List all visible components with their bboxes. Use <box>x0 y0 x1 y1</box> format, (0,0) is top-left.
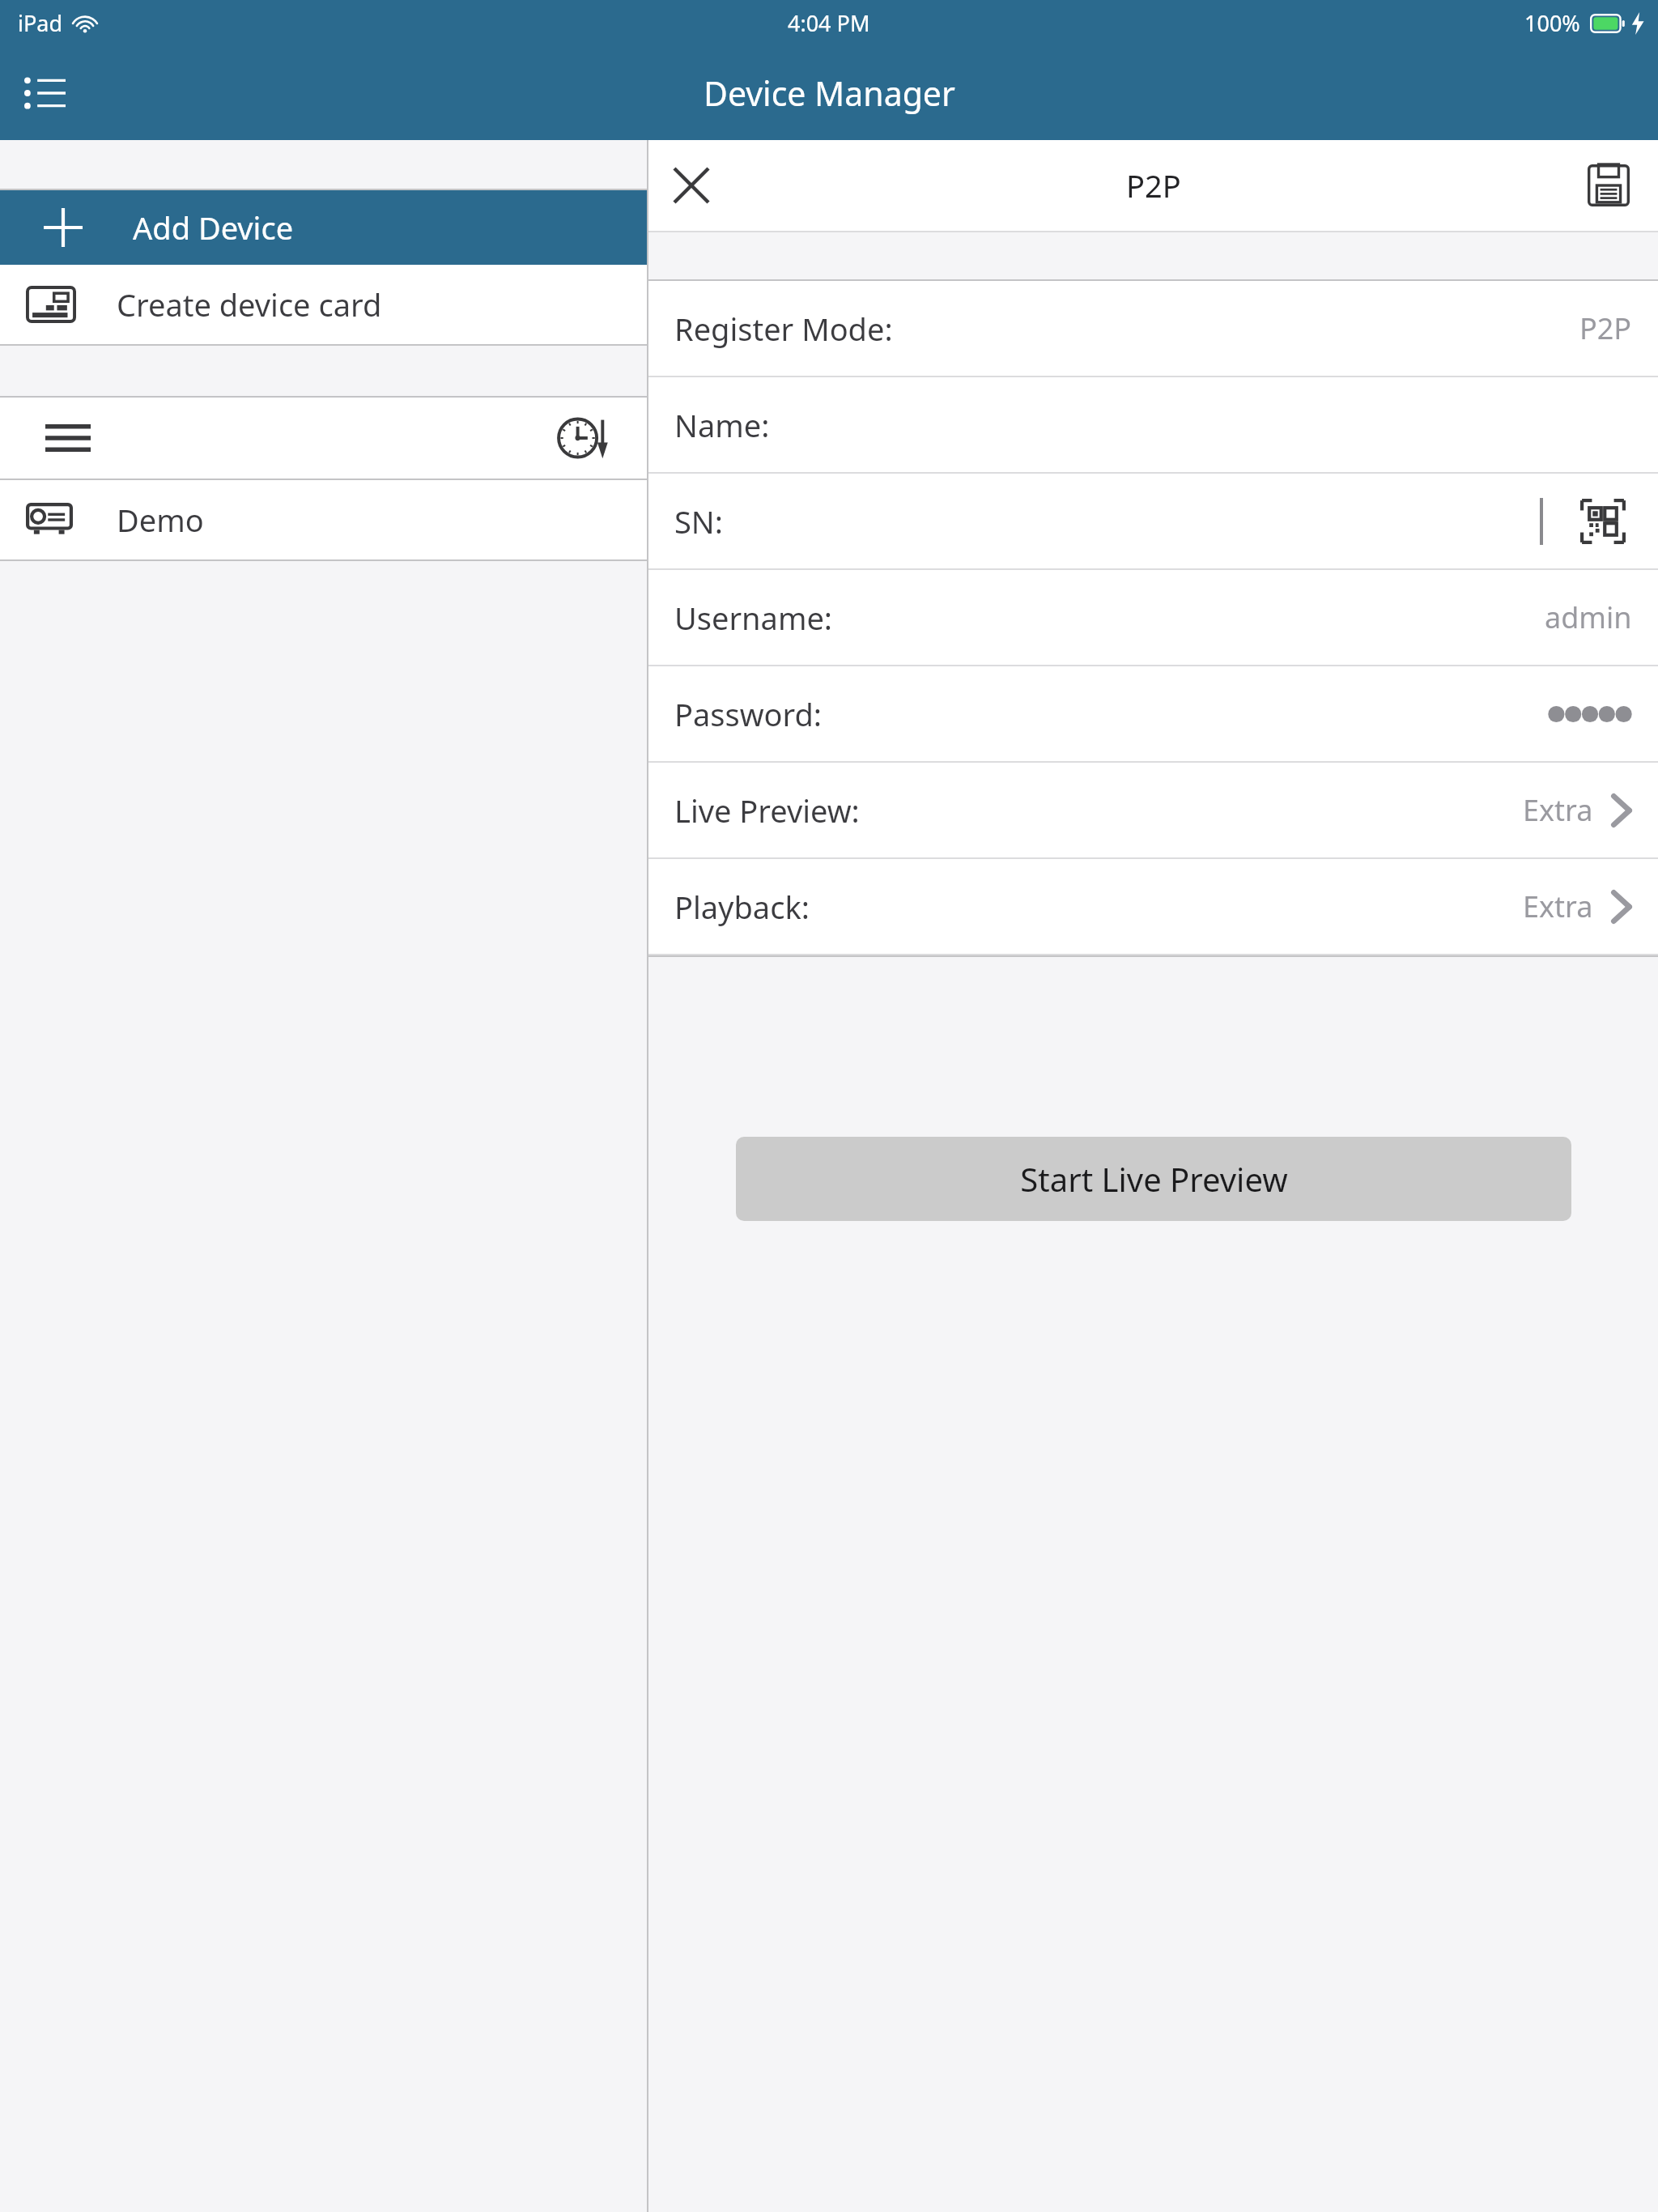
button[interactable]: Close <box>657 151 726 220</box>
staticText: iPad <box>18 8 63 38</box>
button[interactable]: Create device card <box>0 265 647 344</box>
button[interactable]: Add Device <box>0 190 647 265</box>
staticText: P2P <box>1579 308 1632 348</box>
staticText: Add Device <box>133 206 294 249</box>
staticText: Playback: <box>674 886 810 928</box>
staticText: admin <box>1545 598 1632 637</box>
button[interactable]: Scan QR code <box>1574 492 1632 551</box>
staticText: Demo <box>117 499 204 541</box>
staticText: 4:04 PM <box>788 8 870 38</box>
staticText: Extra <box>1523 887 1593 926</box>
button[interactable]: Save <box>1574 151 1643 220</box>
staticText: Username: <box>674 597 833 639</box>
staticText: Live Preview: <box>674 789 860 832</box>
button[interactable]: Start Live Preview <box>736 1137 1571 1221</box>
staticText: Start Live Preview <box>1020 1157 1288 1201</box>
staticText: Register Mode: <box>674 308 893 350</box>
staticText: Extra <box>1523 790 1593 830</box>
button[interactable]: List view <box>36 406 100 470</box>
button[interactable]: Menu <box>11 60 78 126</box>
staticText: SN: <box>674 500 723 542</box>
staticText: 100% <box>1524 8 1580 38</box>
button[interactable]: Playback: <box>648 859 1658 954</box>
staticText: Name: <box>674 404 770 446</box>
staticText: Create device card <box>117 283 382 325</box>
button[interactable]: Live Preview: <box>648 763 1658 857</box>
button[interactable]: Sort by time <box>548 403 618 473</box>
staticText: P2P <box>1126 164 1181 206</box>
button[interactable]: Demo <box>0 480 647 559</box>
staticText: Device Manager <box>704 70 955 116</box>
staticText: Password: <box>674 693 823 735</box>
